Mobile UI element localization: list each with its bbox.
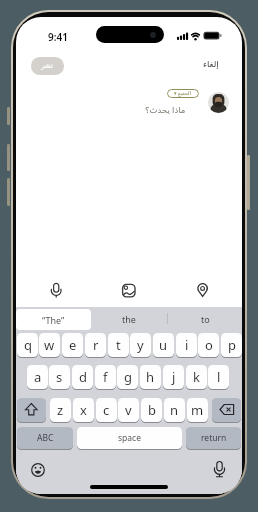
staticText: d (79, 368, 87, 386)
staticText: space (118, 432, 141, 444)
staticText: to (201, 313, 210, 325)
button[interactable]: ABC (17, 427, 73, 449)
staticText: ABC (37, 432, 54, 444)
button[interactable]: j (163, 365, 184, 389)
staticText: ▾ الجميع (174, 90, 192, 97)
button[interactable]: a (27, 365, 48, 389)
button[interactable]: v (118, 398, 139, 422)
staticText: l (217, 368, 221, 386)
button[interactable] (17, 398, 46, 422)
staticText: i (185, 336, 189, 354)
button[interactable]: n (164, 398, 185, 422)
button[interactable]: r (85, 333, 106, 357)
staticText: r (93, 336, 99, 354)
button[interactable] (24, 456, 52, 484)
staticText: k (193, 368, 200, 386)
button[interactable]: w (39, 333, 60, 357)
button[interactable] (212, 398, 241, 422)
button[interactable]: return (186, 427, 241, 449)
staticText: 9:41 (48, 30, 68, 44)
staticText: return (201, 432, 227, 444)
button[interactable] (208, 92, 229, 113)
staticText: f (103, 368, 108, 386)
button[interactable]: t (108, 333, 129, 357)
staticText: m (191, 401, 204, 419)
staticText: t (116, 336, 121, 354)
button[interactable]: l (208, 365, 229, 389)
button[interactable]: “The” (16, 309, 91, 330)
button[interactable] (118, 280, 139, 301)
staticText: g (124, 368, 132, 386)
button[interactable] (46, 280, 67, 301)
staticText: h (146, 368, 155, 386)
button[interactable]: e (62, 333, 83, 357)
button[interactable]: y (130, 333, 151, 357)
staticText: w (44, 336, 55, 354)
button[interactable]: h (140, 365, 161, 389)
staticText: a (34, 368, 42, 386)
staticText: p (228, 336, 236, 354)
button[interactable]: b (141, 398, 162, 422)
staticText: b (148, 401, 156, 419)
button[interactable]: q (17, 333, 38, 357)
button[interactable]: u (153, 333, 174, 357)
button[interactable]: m (187, 398, 208, 422)
button[interactable]: z (50, 398, 71, 422)
staticText: o (205, 336, 213, 354)
button[interactable]: the (109, 309, 149, 329)
staticText: y (137, 336, 144, 354)
staticText: e (69, 336, 77, 354)
button[interactable]: p (221, 333, 242, 357)
staticText: “The” (42, 314, 65, 326)
staticText: q (24, 336, 32, 354)
staticText: z (57, 401, 64, 419)
button[interactable]: إلغاء (194, 56, 228, 71)
staticText: n (170, 401, 179, 419)
button[interactable] (192, 280, 213, 301)
button[interactable]: نشر (31, 57, 64, 75)
staticText: نشر (41, 62, 54, 70)
staticText: u (159, 336, 168, 354)
button[interactable]: space (77, 427, 182, 449)
button[interactable]: i (176, 333, 197, 357)
button[interactable]: s (49, 365, 70, 389)
staticText: v (125, 401, 132, 419)
button[interactable]: x (73, 398, 94, 422)
button[interactable]: ▾ الجميع (167, 89, 199, 98)
button[interactable]: to (185, 309, 225, 329)
staticText: the (122, 313, 136, 325)
staticText: c (103, 401, 110, 419)
button[interactable]: g (117, 365, 138, 389)
button[interactable]: f (95, 365, 116, 389)
button[interactable]: o (198, 333, 219, 357)
staticText: ماذا يحدث؟ (145, 104, 186, 116)
button[interactable]: d (72, 365, 93, 389)
button[interactable] (205, 456, 233, 484)
staticText: إلغاء (203, 59, 219, 69)
staticText: x (80, 401, 87, 419)
staticText: s (56, 368, 63, 386)
button[interactable]: k (186, 365, 207, 389)
staticText: j (172, 368, 176, 386)
button[interactable]: c (96, 398, 117, 422)
